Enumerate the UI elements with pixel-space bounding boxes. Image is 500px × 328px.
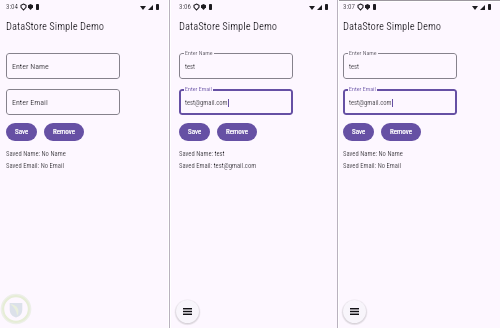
button[interactable]: Enter Email <box>6 89 120 115</box>
staticText: DataStore Simple Demo <box>179 20 278 32</box>
button[interactable]: Open navigation menu <box>176 300 199 323</box>
staticText: Remove <box>226 128 248 136</box>
staticText: Remove <box>53 128 75 136</box>
button[interactable]: Save <box>343 123 374 141</box>
button[interactable]: Save <box>6 123 37 141</box>
button[interactable]: test@gmail.com <box>179 89 293 115</box>
staticText: Saved Email: test@gmail.com <box>179 162 257 170</box>
button[interactable]: test@gmail.com <box>343 89 457 115</box>
staticText: Saved Name: No Name <box>343 150 403 158</box>
staticText: test <box>349 63 360 71</box>
staticText: Save <box>188 128 202 136</box>
staticText: Enter Name <box>12 62 49 71</box>
button[interactable]: Remove <box>217 123 257 141</box>
staticText: Enter Name <box>349 49 377 56</box>
button[interactable]: Remove <box>381 123 421 141</box>
staticText: Saved Email: No Email <box>6 162 64 170</box>
staticText: Enter Email <box>12 98 48 107</box>
button[interactable]: Save <box>179 123 210 141</box>
staticText: DataStore Simple Demo <box>343 20 442 32</box>
staticText: Saved Email: No Email <box>343 162 401 170</box>
staticText: Saved Name: No Name <box>6 150 66 158</box>
staticText: Save <box>352 128 366 136</box>
staticText: Enter Name <box>185 49 213 56</box>
staticText: Enter Email <box>185 85 212 92</box>
staticText: test <box>185 63 196 71</box>
staticText: test@gmail.com <box>185 99 228 107</box>
button[interactable]: Remove <box>44 123 84 141</box>
staticText: 3:07 <box>343 3 356 11</box>
staticText: 3:04 <box>6 3 19 11</box>
staticText: Remove <box>390 128 412 136</box>
staticText: DataStore Simple Demo <box>6 20 105 32</box>
staticText: test@gmail.com <box>349 99 392 107</box>
button[interactable]: Open navigation menu <box>343 300 366 323</box>
button[interactable]: test <box>179 53 293 79</box>
button[interactable]: test <box>343 53 457 79</box>
staticText: Save <box>15 128 29 136</box>
staticText: 3:06 <box>179 3 192 11</box>
button[interactable]: Enter Name <box>6 53 120 79</box>
staticText: Enter Email <box>349 85 376 92</box>
staticText: Saved Name: test <box>179 150 225 158</box>
